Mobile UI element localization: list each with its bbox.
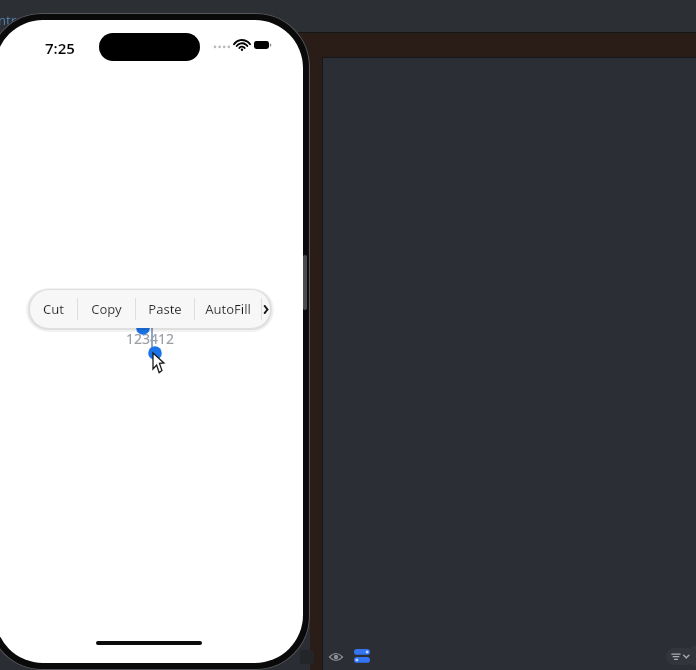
- button[interactable]: Selection end handle: [145, 343, 165, 363]
- staticText: Cut: [43, 300, 64, 318]
- button[interactable]: Layout inspector toggle: [352, 647, 372, 667]
- staticText: AutoFill: [205, 300, 251, 318]
- button[interactable]: Filter: [666, 648, 696, 665]
- button[interactable]: Cut: [30, 290, 77, 328]
- staticText: Copy: [91, 300, 122, 318]
- button[interactable]: Copy: [78, 290, 135, 328]
- button[interactable]: Toggle visibility: [327, 648, 345, 666]
- staticText: Paste: [148, 300, 182, 318]
- button[interactable]: Paste: [136, 290, 194, 328]
- staticText: ntra: [0, 11, 24, 29]
- staticText: 7:25: [45, 38, 75, 58]
- staticText: 123412: [126, 329, 175, 348]
- button[interactable]: More actions: [262, 290, 270, 328]
- button[interactable]: Selection start handle: [133, 318, 153, 338]
- button[interactable]: AutoFill: [195, 290, 261, 328]
